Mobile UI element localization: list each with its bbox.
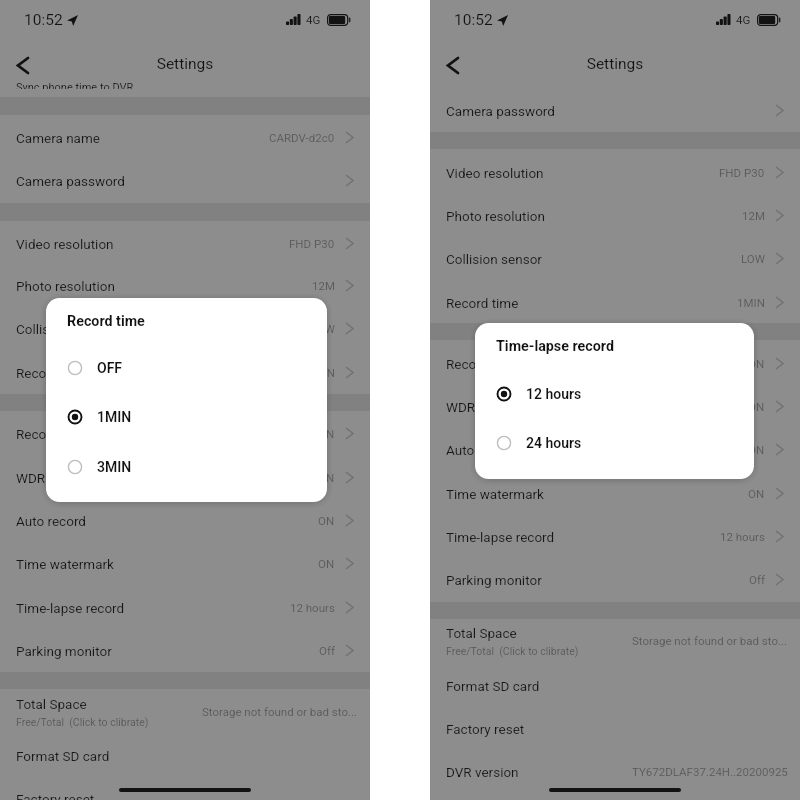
button[interactable]: Camera name <box>0 116 370 159</box>
button[interactable]: Back <box>438 50 468 80</box>
staticText: Free/Total (Click to clibrate) <box>446 645 579 657</box>
staticText: 10:52 <box>454 11 493 29</box>
staticText: Total Space <box>16 696 87 712</box>
button[interactable]: 1MIN <box>46 393 327 441</box>
button[interactable]: Back <box>8 50 38 80</box>
staticText: Parking monitor <box>16 643 112 659</box>
staticText: 1MIN <box>97 409 132 425</box>
button[interactable]: OFF <box>46 344 327 392</box>
staticText: ON <box>318 557 335 570</box>
staticText: Factory reset <box>16 791 95 800</box>
staticText: CARDV-d2c0 <box>269 131 335 144</box>
button[interactable]: 24 hours <box>475 419 754 467</box>
staticText: Time watermark <box>16 556 114 572</box>
button[interactable]: WDR <box>430 385 800 428</box>
staticText: 12 hours <box>720 530 765 543</box>
staticText: Time-lapse record <box>496 338 614 355</box>
button[interactable]: Record audio <box>430 342 800 385</box>
staticText: OFF <box>97 360 123 376</box>
button[interactable]: Time watermark <box>430 472 800 515</box>
staticText: Off <box>749 573 765 586</box>
button[interactable]: Photo resolution <box>430 194 800 237</box>
button[interactable]: Video resolution <box>430 151 800 194</box>
staticText: Camera password <box>446 103 555 119</box>
staticText: 12M <box>312 279 335 292</box>
button[interactable]: Video resolution <box>0 222 370 265</box>
button[interactable]: 3MIN <box>46 443 327 491</box>
staticText: 24 hours <box>526 435 582 451</box>
button[interactable]: Format SD card <box>0 734 370 777</box>
staticText: Auto record <box>16 513 86 529</box>
staticText: WDR <box>446 399 476 415</box>
staticText: Time-lapse record <box>446 529 555 545</box>
staticText: Off <box>319 644 335 657</box>
button[interactable]: Photo resolution <box>0 264 370 307</box>
staticText: Collision sensor <box>446 251 542 267</box>
button[interactable]: Auto record <box>0 499 370 542</box>
button[interactable]: Parking monitor <box>0 629 370 672</box>
button[interactable]: WDR <box>0 456 370 499</box>
button[interactable]: 12 hours <box>475 370 754 418</box>
staticText: Auto record <box>446 442 516 458</box>
button[interactable]: Format SD card <box>430 664 800 707</box>
staticText: 4G <box>736 13 751 26</box>
staticText: 1MIN <box>307 366 335 379</box>
staticText: 3MIN <box>97 459 132 475</box>
staticText: Total Space <box>446 625 517 641</box>
staticText: Format SD card <box>446 678 540 694</box>
staticText: ON <box>748 443 765 456</box>
button[interactable]: Total Space <box>0 690 370 733</box>
staticText: ON <box>748 357 765 370</box>
staticText: 4G <box>306 13 321 26</box>
staticText: Record time <box>446 295 519 311</box>
staticText: Parking monitor <box>446 572 542 588</box>
staticText: LOW <box>741 252 765 265</box>
button[interactable]: Record time <box>0 351 370 394</box>
button[interactable]: Collision sensor <box>0 307 370 350</box>
button[interactable]: Record audio <box>0 412 370 455</box>
staticText: Format SD card <box>16 748 110 764</box>
button[interactable]: Time-lapse record <box>0 586 370 629</box>
staticText: Free/Total (Click to clibrate) <box>16 716 149 728</box>
staticText: Time watermark <box>446 486 544 502</box>
staticText: Video resolution <box>446 165 544 181</box>
staticText: Settings <box>430 55 800 73</box>
staticText: Collision sensor <box>16 321 112 337</box>
staticText: 12 hours <box>526 386 582 402</box>
staticText: Factory reset <box>446 721 525 737</box>
staticText: Record audio <box>16 426 96 442</box>
button[interactable]: Total Space <box>430 619 800 662</box>
staticText: Storage not found or bad sto... <box>202 705 358 718</box>
staticText: ON <box>748 400 765 413</box>
staticText: Camera password <box>16 173 125 189</box>
button[interactable]: Factory reset <box>430 707 800 750</box>
button[interactable]: Camera password <box>430 89 800 132</box>
button[interactable]: Time-lapse record <box>430 515 800 558</box>
staticText: ON <box>318 514 335 527</box>
staticText: Camera name <box>16 130 100 146</box>
button[interactable]: Factory reset <box>0 777 370 800</box>
staticText: FHD P30 <box>289 237 335 250</box>
button[interactable]: Camera password <box>0 159 370 202</box>
staticText: 12 hours <box>290 601 335 614</box>
staticText: 1MIN <box>737 296 765 309</box>
staticText: LOW <box>311 322 335 335</box>
staticText: FHD P30 <box>719 166 765 179</box>
staticText: WDR <box>16 470 46 486</box>
button[interactable]: Auto record <box>430 428 800 471</box>
staticText: ON <box>318 427 335 440</box>
staticText: Photo resolution <box>446 208 545 224</box>
staticText: 10:52 <box>24 11 63 29</box>
button[interactable]: Parking monitor <box>430 558 800 601</box>
staticText: Record audio <box>446 356 526 372</box>
staticText: Sync phone time to DVR <box>16 82 134 89</box>
button[interactable]: Record time <box>430 281 800 324</box>
staticText: Record time <box>16 365 89 381</box>
staticText: Settings <box>0 55 370 73</box>
button[interactable]: DVR version <box>430 750 800 793</box>
button[interactable]: Time watermark <box>0 542 370 585</box>
staticText: Record time <box>67 313 145 330</box>
button[interactable]: Collision sensor <box>430 237 800 280</box>
staticText: Time-lapse record <box>16 600 125 616</box>
staticText: ON <box>748 487 765 500</box>
